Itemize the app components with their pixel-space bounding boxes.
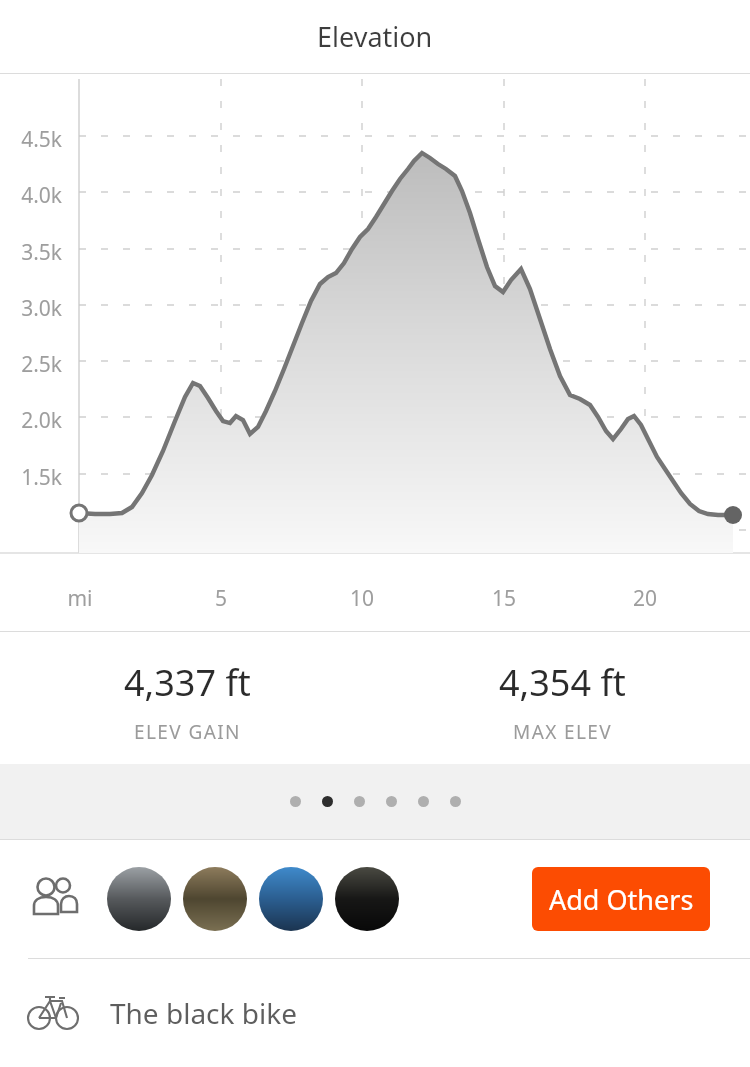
staticText: ELEV GAIN — [134, 719, 241, 745]
button[interactable]: Athlete — [107, 867, 171, 931]
staticText: 10 — [322, 584, 402, 613]
button[interactable]: Athlete — [183, 867, 247, 931]
staticText: mi — [40, 584, 120, 613]
button[interactable] — [386, 796, 397, 807]
button[interactable] — [322, 796, 333, 807]
button[interactable]: Athlete — [259, 867, 323, 931]
staticText: 5 — [181, 584, 261, 613]
staticText: 4.5k — [0, 125, 62, 154]
staticText: 2.0k — [0, 406, 62, 435]
staticText: 4.0k — [0, 181, 62, 210]
button[interactable]: 4,337 ft — [0, 632, 375, 764]
staticText: 1.5k — [0, 463, 62, 492]
staticText: Elevation — [317, 18, 433, 55]
button[interactable]: Athlete — [335, 867, 399, 931]
button[interactable] — [354, 796, 365, 807]
staticText: 2.5k — [0, 350, 62, 379]
button[interactable]: Athletes — [26, 871, 82, 927]
button[interactable]: Add Others — [532, 867, 710, 931]
staticText: 20 — [605, 584, 685, 613]
button[interactable] — [418, 796, 429, 807]
staticText: Add Others — [549, 881, 694, 918]
staticText: 4,354 ft — [499, 658, 626, 707]
button[interactable]: The black bike — [0, 959, 750, 1067]
staticText: 3.5k — [0, 238, 62, 267]
staticText: 3.0k — [0, 294, 62, 323]
staticText: 15 — [464, 584, 544, 613]
button[interactable] — [290, 796, 301, 807]
staticText: 4,337 ft — [124, 658, 251, 707]
button[interactable] — [450, 796, 461, 807]
button[interactable]: 4,354 ft — [375, 632, 750, 764]
staticText: MAX ELEV — [513, 719, 613, 745]
staticText: The black bike — [110, 994, 297, 1032]
